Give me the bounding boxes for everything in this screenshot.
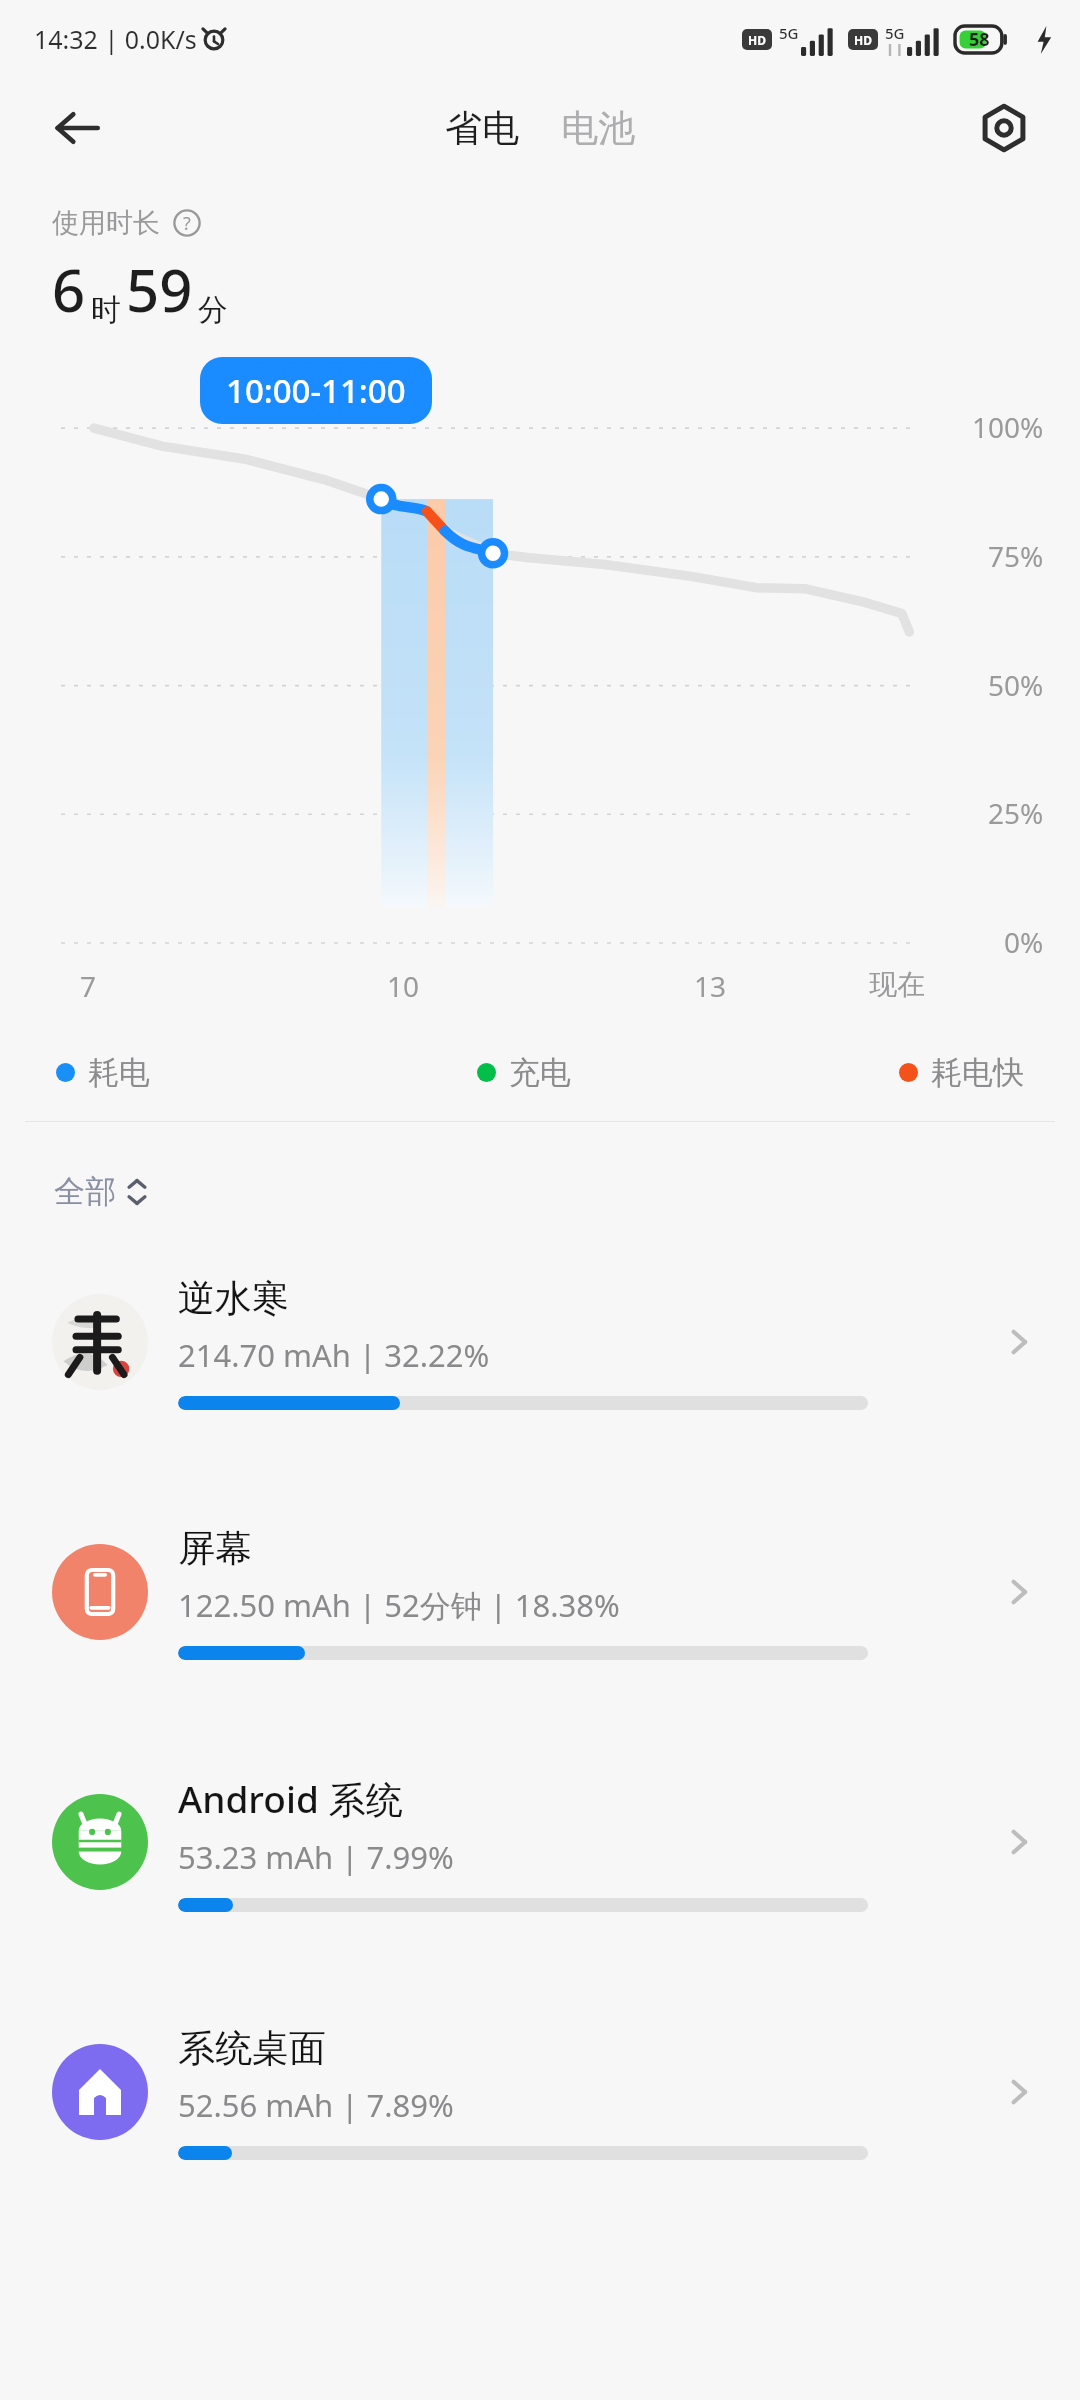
button[interactable]: Help (170, 206, 204, 240)
button[interactable]: Settings (972, 96, 1036, 160)
staticText: 耗电快 (931, 1053, 1024, 1092)
staticText: 耗电 (88, 1053, 150, 1092)
button[interactable]: 逆水寒 (0, 1217, 1080, 1467)
staticText: 省电 (445, 105, 519, 152)
staticText: 13 (694, 967, 727, 1005)
staticText: 0% (1004, 923, 1044, 961)
staticText: 逆水寒 (178, 1275, 289, 1322)
staticText: HD (854, 32, 872, 48)
staticText: 59 (126, 250, 193, 329)
staticText: HD (748, 32, 766, 48)
staticText: 53.23 mAh | 7.99% (178, 1836, 454, 1878)
staticText: 58 (969, 27, 990, 52)
staticText: 14:32 | 0.0K/s (34, 22, 197, 56)
staticText: 52.56 mAh | 7.89% (178, 2084, 454, 2126)
staticText: Android 系统 (178, 1773, 403, 1824)
staticText: 75% (988, 537, 1044, 575)
staticText: 屏幕 (178, 1525, 252, 1572)
staticText: 充电 (509, 1053, 571, 1092)
staticText: 时 (91, 291, 121, 329)
staticText: 5G (779, 23, 799, 43)
staticText: 25% (988, 794, 1044, 832)
button[interactable]: Back (46, 97, 108, 159)
button[interactable]: Android 系统 (0, 1717, 1080, 1967)
staticText: 214.70 mAh | 32.22% (178, 1334, 490, 1376)
staticText: 7 (80, 967, 97, 1005)
staticText: ? (183, 211, 191, 236)
staticText: 电池 (561, 105, 635, 152)
staticText: 100% (972, 408, 1044, 446)
button[interactable]: 全部 (52, 1166, 150, 1217)
staticText: 10:00-11:00 (226, 368, 406, 413)
button[interactable]: 省电 (439, 99, 525, 158)
staticText: 现在 (869, 967, 925, 1002)
staticText: 分 (198, 291, 228, 329)
button[interactable]: 系统桌面 (0, 1967, 1080, 2217)
button[interactable]: 电池 (555, 99, 641, 158)
staticText: 122.50 mAh | 52分钟 | 18.38% (178, 1584, 620, 1626)
staticText: 10 (387, 967, 420, 1005)
staticText: 全部 (54, 1172, 116, 1211)
staticText: 使用时长 (52, 206, 160, 240)
staticText: 6 (52, 250, 86, 329)
staticText: 5G (885, 23, 905, 43)
staticText: 50% (988, 666, 1044, 704)
staticText: 系统桌面 (178, 2025, 326, 2072)
button[interactable]: 屏幕 (0, 1467, 1080, 1717)
button[interactable]: 10:00-11:00 (200, 357, 432, 424)
